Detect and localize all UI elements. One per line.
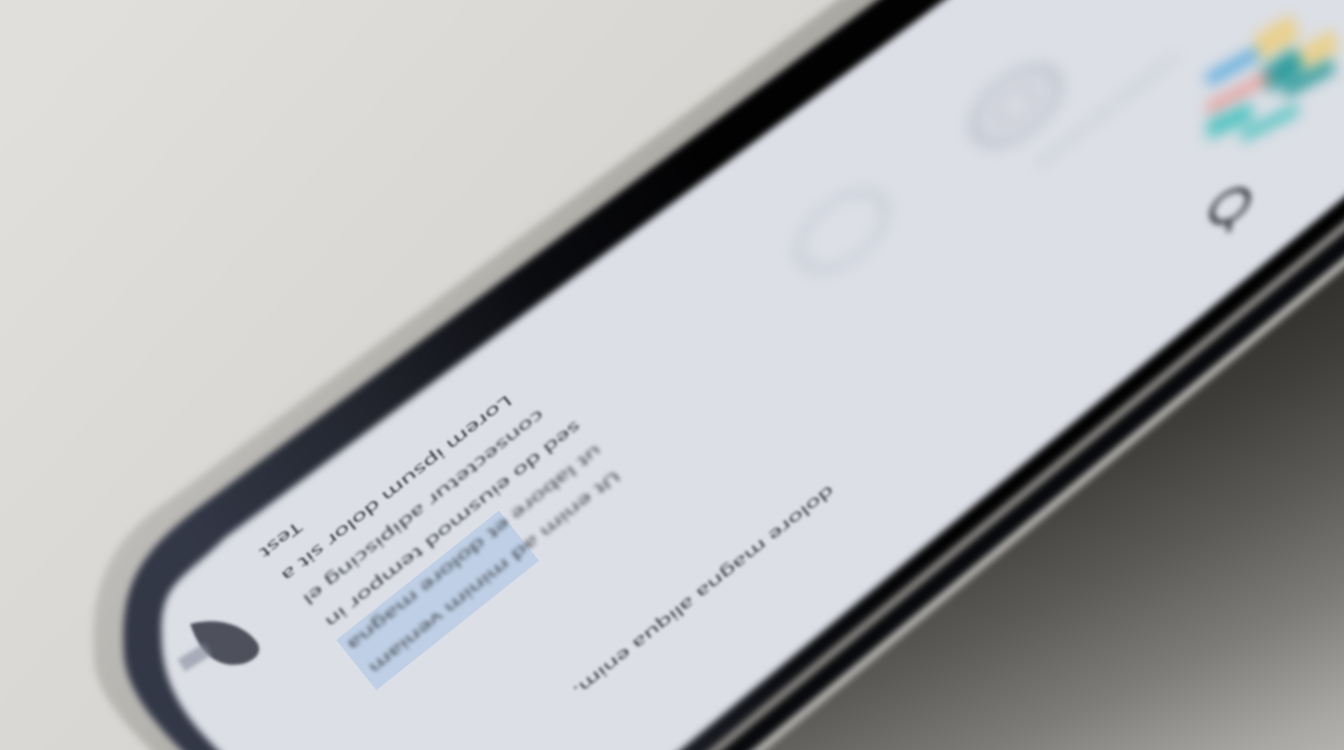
button[interactable]: Phone showing a document bbox=[0, 0, 1344, 750]
